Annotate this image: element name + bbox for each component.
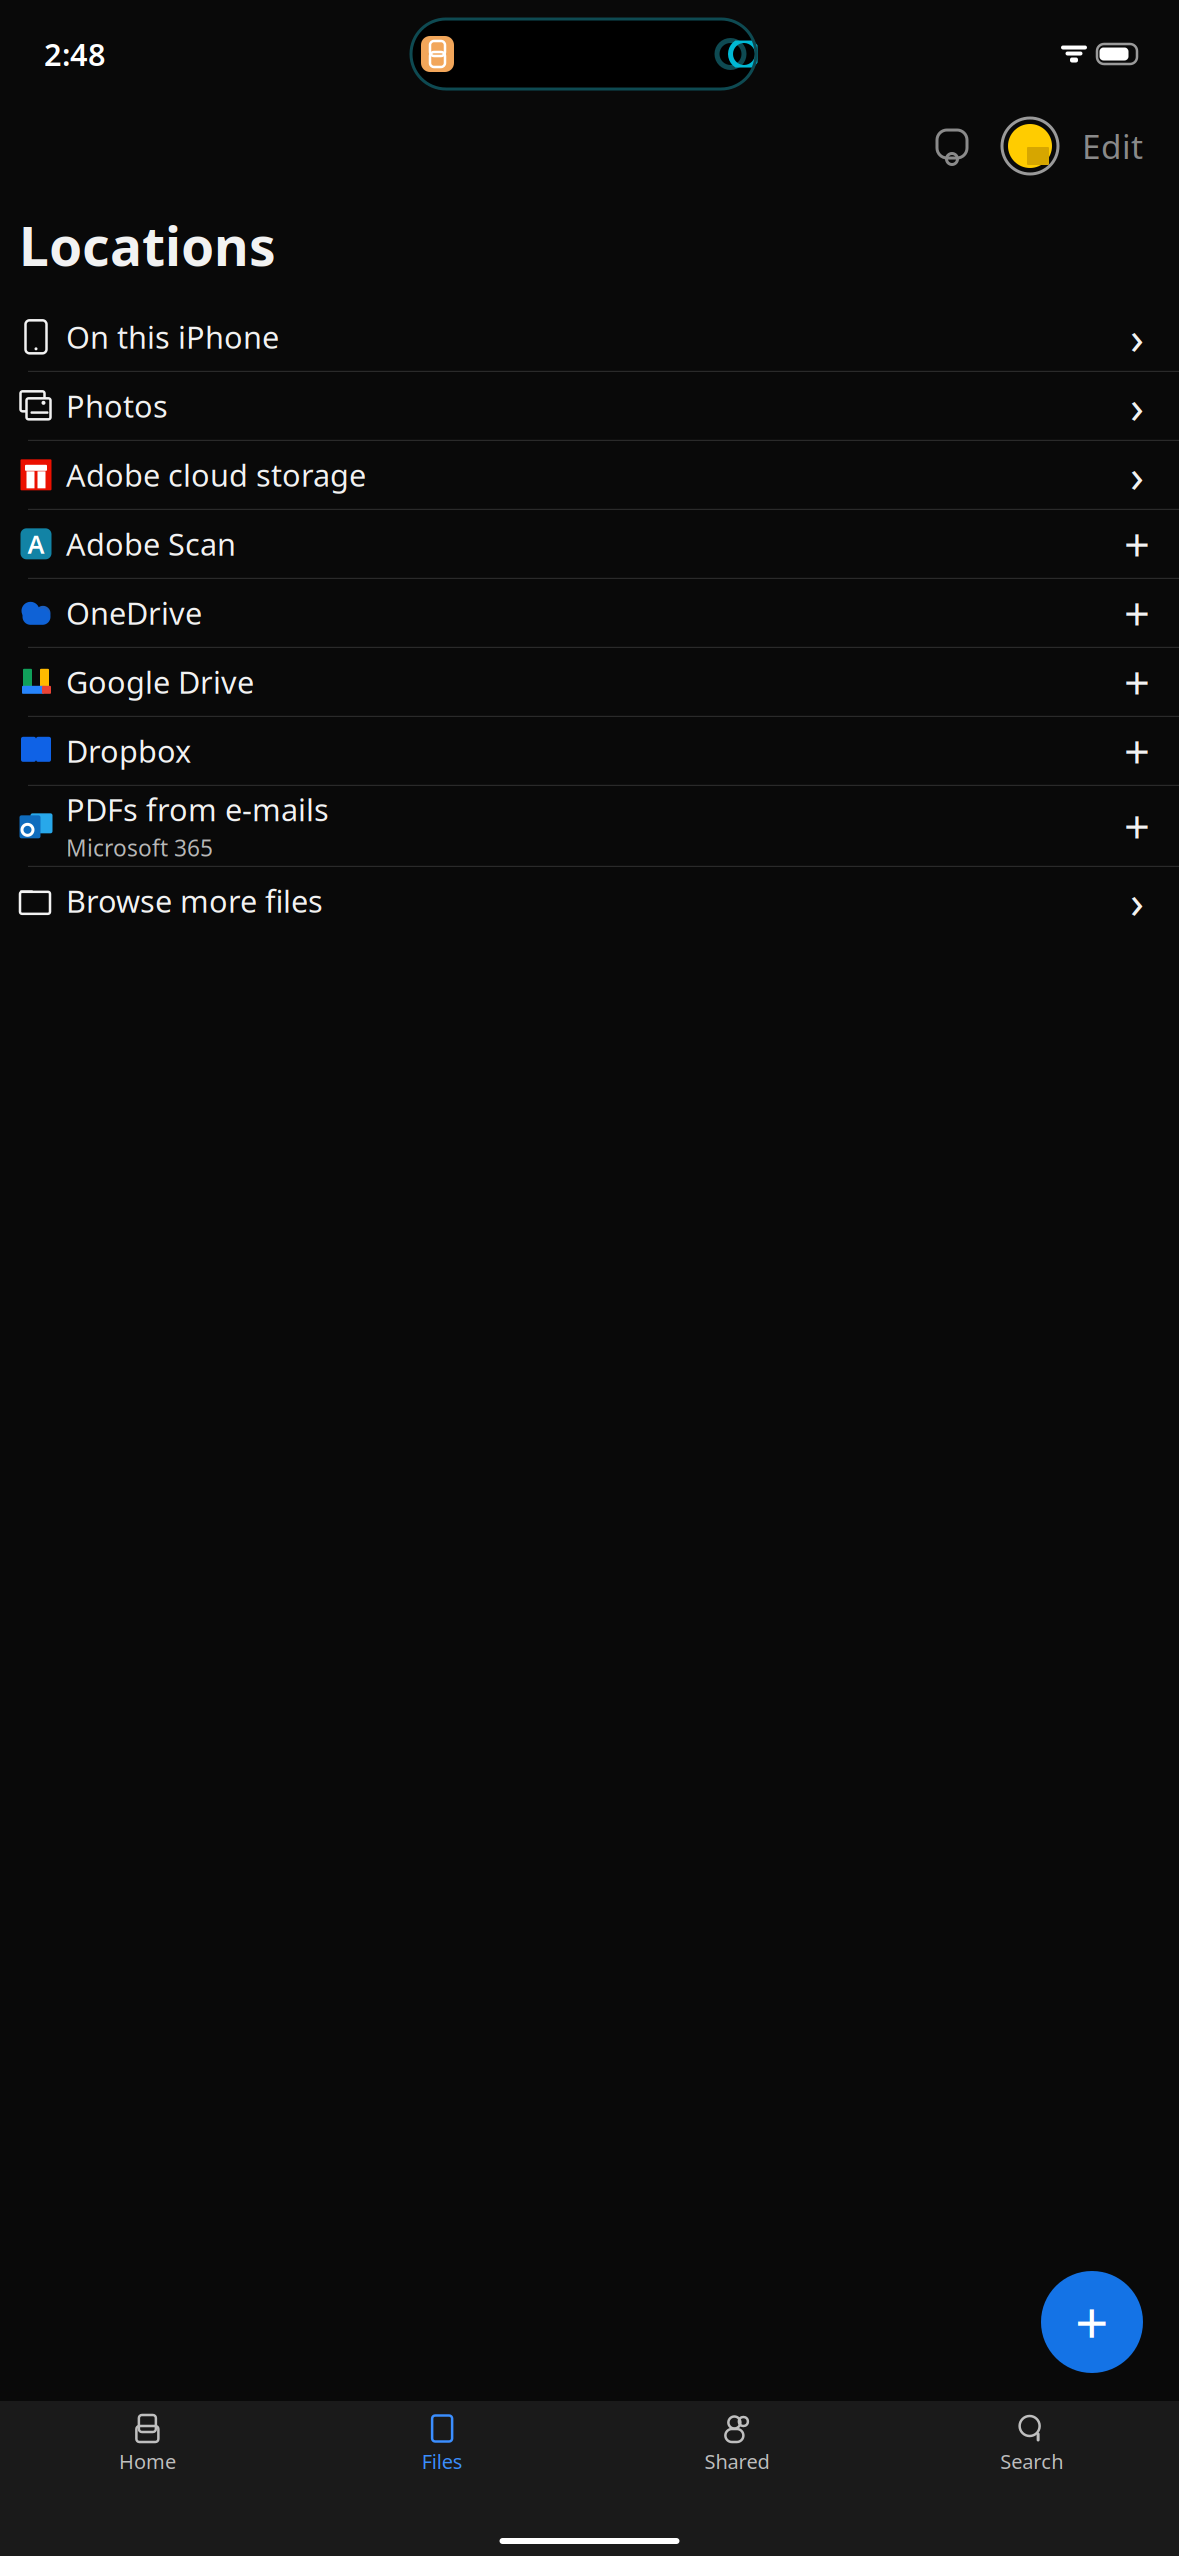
staticText: Home: [119, 2448, 176, 2475]
staticText: Shared: [704, 2448, 769, 2475]
button[interactable]: Search: [884, 2405, 1179, 2479]
staticText: Edit: [1082, 124, 1143, 168]
staticText: +: [1124, 796, 1150, 856]
staticText: Locations: [19, 210, 276, 281]
staticText: ›: [1130, 445, 1144, 505]
button[interactable]: Dropbox: [0, 717, 1179, 785]
staticText: +: [1124, 583, 1150, 643]
staticText: ›: [1130, 376, 1144, 436]
staticText: Adobe cloud storage: [66, 454, 366, 495]
staticText: Dropbox: [66, 730, 191, 771]
button[interactable]: PDFs from e-mails: [0, 786, 1179, 866]
staticText: Browse more files: [66, 880, 323, 921]
button[interactable]: A: [0, 510, 1179, 578]
staticText: Files: [422, 2448, 463, 2475]
staticText: On this iPhone: [66, 316, 279, 357]
staticText: +: [1075, 2283, 1109, 2361]
button[interactable]: Photos: [0, 372, 1179, 440]
staticText: Adobe Scan: [66, 523, 236, 564]
button[interactable]: Notifications: [922, 116, 982, 176]
button[interactable]: Profile: [992, 108, 1068, 184]
staticText: +: [1124, 652, 1150, 712]
button[interactable]: OneDrive: [0, 579, 1179, 647]
staticText: Search: [1000, 2448, 1063, 2475]
button[interactable]: Home: [0, 2405, 295, 2479]
staticText: PDFs from e-mails: [66, 789, 329, 830]
staticText: Microsoft 365: [66, 833, 213, 863]
staticText: 2:48: [44, 34, 106, 74]
staticText: ›: [1130, 871, 1144, 931]
staticText: ›: [1130, 307, 1144, 367]
staticText: A: [27, 527, 44, 561]
button[interactable]: Files: [295, 2405, 590, 2479]
button[interactable]: Google Drive: [0, 648, 1179, 716]
button[interactable]: Shared: [589, 2405, 884, 2479]
button[interactable]: Browse more files: [0, 867, 1179, 935]
button[interactable]: Create: [1041, 2271, 1143, 2373]
staticText: +: [1124, 514, 1150, 574]
button[interactable]: On this iPhone: [0, 303, 1179, 371]
button[interactable]: Edit: [1068, 116, 1157, 176]
button[interactable]: Adobe cloud storage: [0, 441, 1179, 509]
staticText: +: [1124, 721, 1150, 781]
staticText: OneDrive: [66, 592, 202, 633]
staticText: Photos: [66, 385, 168, 426]
staticText: Google Drive: [66, 661, 254, 702]
